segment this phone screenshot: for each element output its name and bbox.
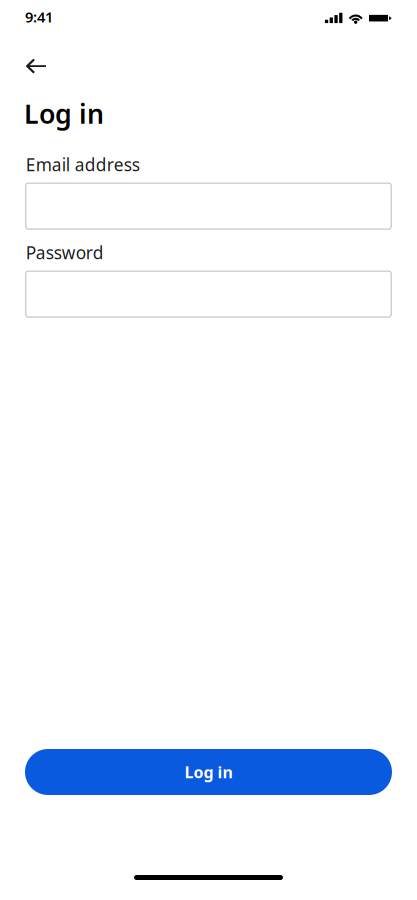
button[interactable]: Back [0, 50, 64, 82]
staticText: 9:41 [25, 7, 53, 26]
button[interactable]: Email address [26, 183, 391, 229]
button[interactable]: Password [26, 271, 391, 317]
button[interactable]: Log in [25, 749, 392, 795]
staticText: Log in [24, 96, 104, 131]
staticText: Log in [184, 761, 232, 783]
staticText: Email address [26, 153, 140, 176]
staticText: Password [26, 241, 104, 264]
